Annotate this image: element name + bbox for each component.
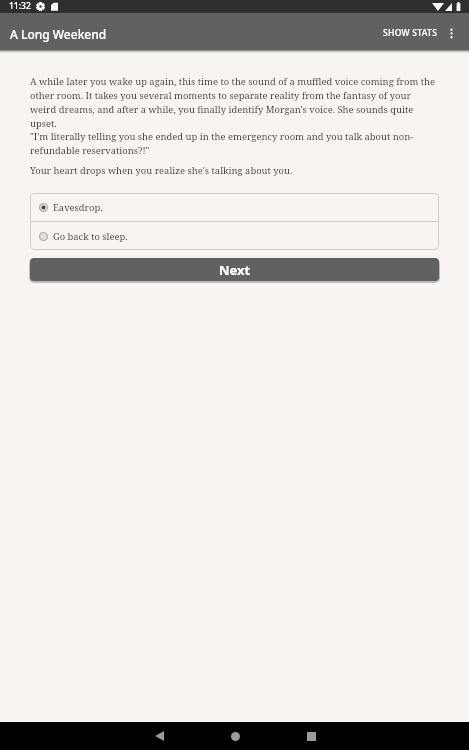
staticText: SHOW STATS	[383, 27, 438, 39]
staticText: A while later you wake up again, this ti…	[30, 75, 439, 130]
button[interactable]: Recent apps	[287, 722, 335, 750]
button[interactable]: Eavesdrop.	[30, 193, 439, 221]
staticText: Go back to sleep.	[53, 230, 128, 243]
staticText: Eavesdrop.	[53, 201, 103, 214]
button[interactable]: SHOW STATS	[373, 19, 438, 49]
staticText: Next	[219, 261, 251, 279]
button[interactable]: Go back to sleep.	[30, 222, 439, 250]
button[interactable]: Home	[211, 722, 259, 750]
button[interactable]: Back	[135, 722, 183, 750]
button[interactable]: More options	[438, 20, 465, 46]
staticText: Your heart drops when you realize she's …	[30, 164, 293, 177]
staticText: "I'm literally telling you she ended up …	[30, 130, 439, 157]
staticText: 11:32	[9, 0, 31, 12]
staticText: A Long Weekend	[10, 26, 107, 42]
button[interactable]: Next	[30, 258, 439, 281]
